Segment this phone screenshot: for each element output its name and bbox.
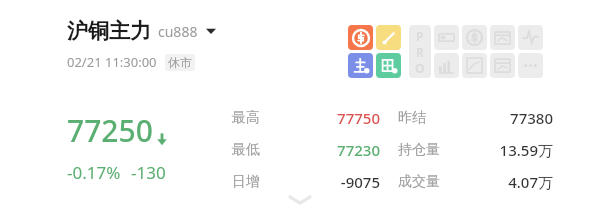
- button[interactable]: Switch contract: [204, 24, 218, 38]
- staticText: 持仓量: [398, 141, 440, 159]
- staticText: 沪铜主力: [67, 18, 151, 44]
- staticText: -0.17%: [67, 161, 121, 184]
- staticText: 77750: [260, 108, 380, 128]
- staticText: 77230: [260, 140, 380, 160]
- staticText: 4.07万: [440, 172, 553, 192]
- staticText: 昨结: [398, 109, 426, 127]
- button[interactable]: Report: [490, 53, 515, 78]
- button[interactable]: Trend: [462, 53, 487, 78]
- button[interactable]: More: [518, 53, 543, 78]
- staticText: -9075: [260, 172, 380, 192]
- staticText: -130: [131, 161, 166, 184]
- button[interactable]: Calendar: [490, 25, 515, 50]
- button[interactable]: Tool: [376, 25, 401, 50]
- staticText: O: [415, 60, 425, 76]
- staticText: 最低: [232, 141, 260, 159]
- button[interactable]: 成交量: [398, 172, 553, 192]
- staticText: 成交量: [398, 173, 440, 191]
- button[interactable]: Funds: [462, 25, 487, 50]
- button[interactable]: Bar chart: [434, 53, 459, 78]
- button[interactable]: 日增: [232, 172, 380, 192]
- button[interactable]: 最低: [232, 140, 380, 160]
- staticText: 休市: [168, 55, 192, 70]
- button[interactable]: 昨结: [398, 108, 553, 128]
- staticText: 77250: [67, 110, 153, 151]
- staticText: 77380: [426, 108, 553, 128]
- staticText: 02/21 11:30:00: [67, 53, 157, 71]
- staticText: 最高: [232, 109, 260, 127]
- button[interactable]: Expand: [277, 191, 323, 209]
- button[interactable]: Tool: [348, 25, 373, 50]
- staticText: 13.59万: [440, 140, 553, 160]
- staticText: P: [416, 28, 424, 44]
- button[interactable]: Tool: [348, 53, 373, 78]
- button[interactable]: Tool: [376, 53, 401, 78]
- staticText: 日增: [232, 173, 260, 191]
- button[interactable]: 最高: [232, 108, 380, 128]
- button[interactable]: 持仓量: [398, 140, 553, 160]
- staticText: R: [416, 44, 424, 60]
- staticText: cu888: [158, 22, 198, 41]
- button[interactable]: Pulse: [518, 25, 543, 50]
- button[interactable]: Card: [434, 25, 459, 50]
- button[interactable]: PRO: [409, 25, 431, 78]
